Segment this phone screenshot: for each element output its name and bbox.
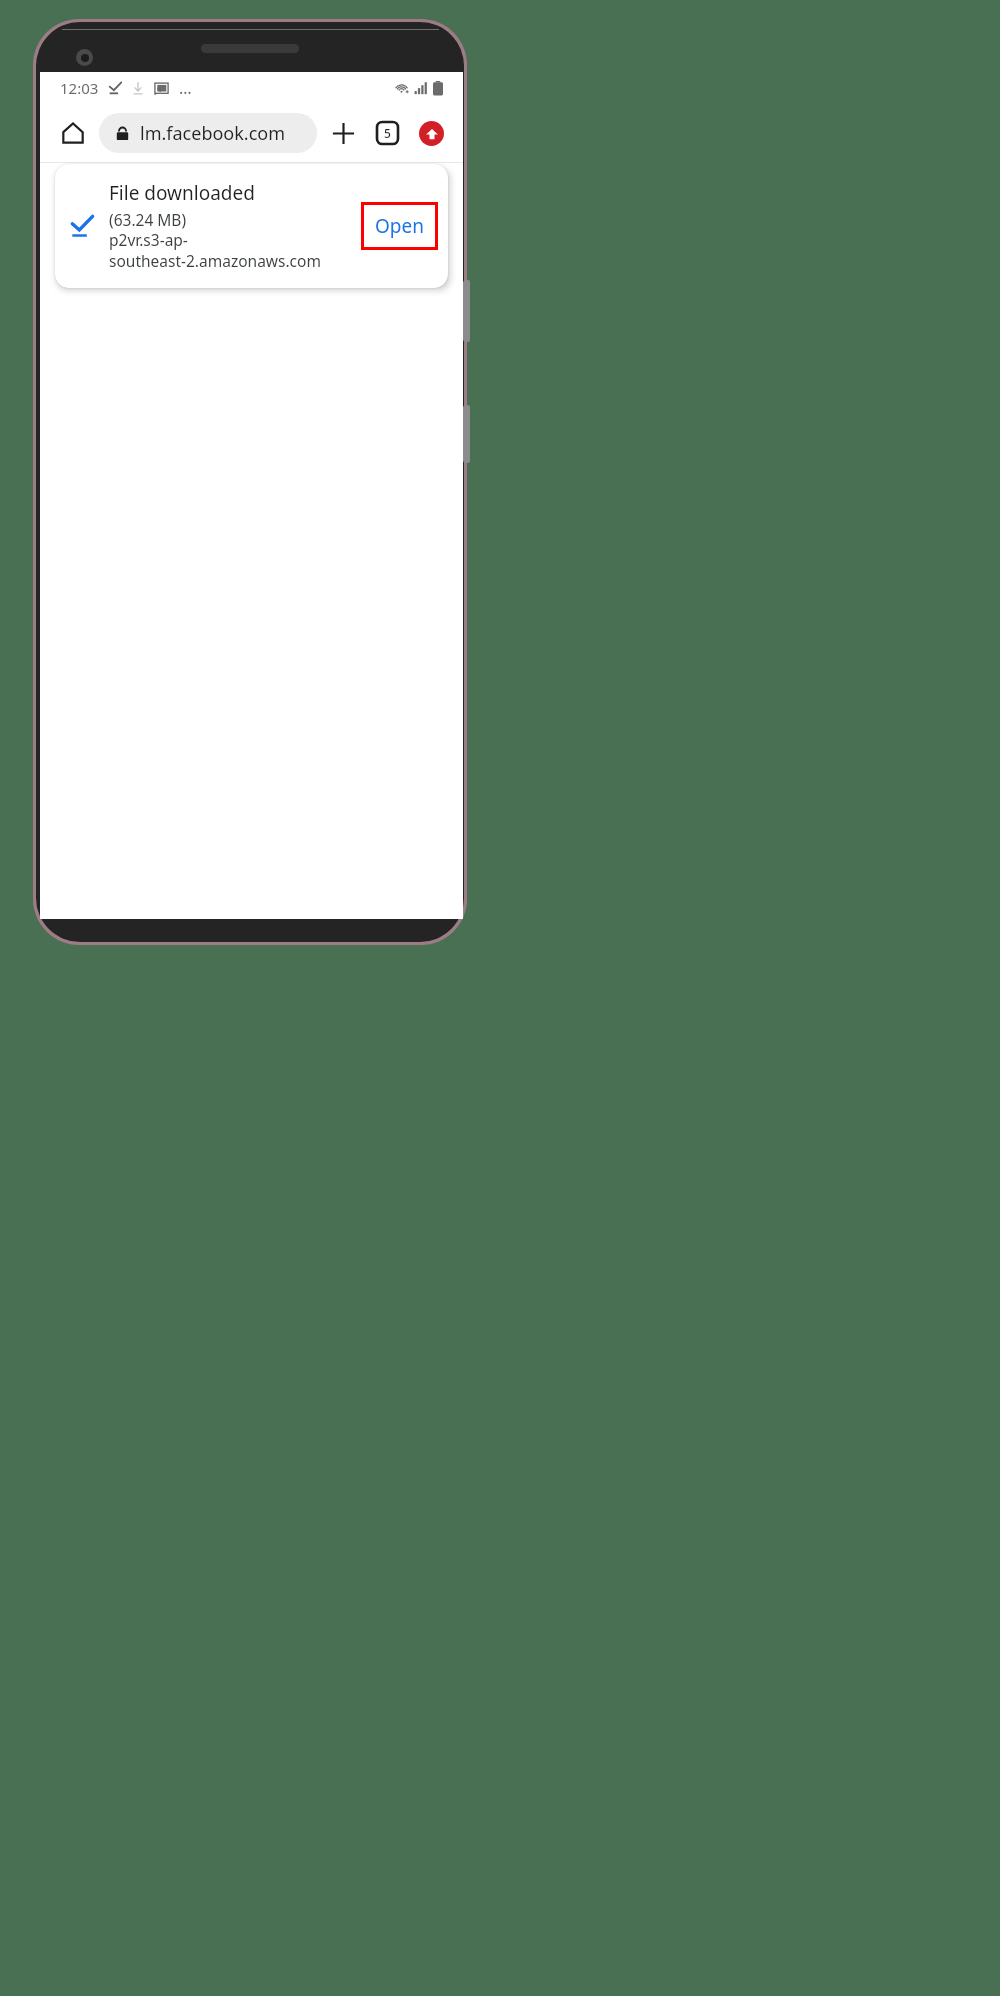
- staticText: …: [179, 77, 192, 99]
- button[interactable]: Update available: [411, 113, 451, 153]
- button[interactable]: lm.facebook.com: [99, 113, 317, 153]
- staticText: File downloaded: [109, 180, 255, 206]
- button[interactable]: Tabs: 5: [367, 113, 407, 153]
- staticText: 5: [384, 125, 391, 141]
- button[interactable]: Open: [361, 202, 438, 250]
- staticText: lm.facebook.com: [140, 121, 286, 146]
- staticText: Open: [375, 213, 424, 239]
- staticText: (63.24 MB) p2vr.s3-ap-southeast-2.amazon…: [109, 209, 357, 272]
- button[interactable]: Home: [55, 115, 91, 151]
- staticText: 12:03: [60, 78, 99, 98]
- button[interactable]: New tab: [323, 113, 363, 153]
- button[interactable]: File downloaded: [55, 164, 448, 288]
